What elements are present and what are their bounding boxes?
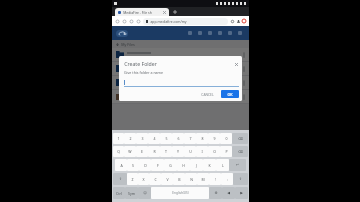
button[interactable]: F <box>151 159 164 171</box>
button[interactable]: ◀ <box>222 187 235 199</box>
staticText: I <box>201 149 203 154</box>
staticText: ◀ <box>227 191 230 195</box>
button[interactable]: Home <box>135 18 142 25</box>
button[interactable]: I <box>196 146 208 157</box>
button[interactable]: C <box>149 173 161 185</box>
button[interactable]: O <box>208 146 220 157</box>
button[interactable]: S <box>127 159 139 171</box>
button[interactable]: Forward <box>128 18 135 25</box>
button[interactable]: CANCEL <box>197 90 218 98</box>
button[interactable]: V <box>161 173 173 185</box>
button[interactable]: Ctrl <box>113 187 125 199</box>
button[interactable]: P <box>220 146 232 157</box>
staticText: MediaFire - File sh <box>123 10 152 15</box>
staticText: X <box>142 177 145 182</box>
button[interactable]: U <box>184 146 196 157</box>
button[interactable] <box>112 90 249 103</box>
button[interactable]: 9 <box>208 133 220 144</box>
button[interactable]: Back <box>121 18 128 25</box>
button[interactable]: ⚙ <box>209 187 222 199</box>
button[interactable]: Reload <box>114 18 121 25</box>
staticText: English(US) <box>172 191 189 195</box>
button[interactable]: Z <box>127 173 138 185</box>
button[interactable]: 4 <box>148 133 160 144</box>
staticText: J <box>196 163 197 168</box>
button[interactable]: 5 <box>160 133 172 144</box>
button[interactable]: ⇧ <box>113 173 127 185</box>
staticText: 5 <box>165 136 168 141</box>
button[interactable]: Menu <box>241 18 247 24</box>
button[interactable]: A <box>115 159 127 171</box>
button[interactable]: L <box>216 159 229 171</box>
button[interactable]: 1 <box>113 133 124 144</box>
staticText: ! <box>215 177 216 182</box>
button[interactable]: ! <box>209 173 221 185</box>
button[interactable]: MediaFire home <box>116 30 128 37</box>
button[interactable]: ⌫ <box>232 133 248 144</box>
button[interactable]: Close <box>233 61 239 67</box>
button[interactable]: ☺ <box>138 187 151 199</box>
button[interactable]: Search <box>216 29 224 37</box>
button[interactable]: Account <box>236 29 244 37</box>
button[interactable]: R <box>148 146 160 157</box>
button[interactable]: E <box>136 146 148 157</box>
button[interactable]: M <box>197 173 209 185</box>
button[interactable] <box>112 48 249 61</box>
button[interactable]: Sym <box>125 187 138 199</box>
staticText: ⇧ <box>239 177 242 181</box>
staticText: Ctrl <box>116 191 122 196</box>
button[interactable]: Y <box>172 146 184 157</box>
button[interactable]: Filter <box>206 29 214 37</box>
button[interactable]: B <box>173 173 185 185</box>
staticText: Z <box>131 177 134 182</box>
button[interactable]: Notifications <box>226 29 234 37</box>
button[interactable]: My Files <box>116 40 245 48</box>
button[interactable]: Profile <box>235 18 241 24</box>
button[interactable]: ▶ <box>235 187 248 199</box>
staticText: ☺ <box>143 191 147 195</box>
staticText: B <box>178 177 181 182</box>
staticText: 6 <box>177 136 180 141</box>
button[interactable]: W <box>124 146 136 157</box>
button[interactable]: MediaFire - File sh <box>115 8 169 16</box>
staticText: Give this folder a name <box>124 70 163 75</box>
button[interactable]: 7 <box>184 133 196 144</box>
button[interactable]: Bookmark <box>229 18 235 24</box>
button[interactable]: T <box>160 146 172 157</box>
button[interactable]: 2 <box>124 133 136 144</box>
staticText: C <box>154 177 157 182</box>
button[interactable]: ⌫ <box>232 146 248 157</box>
staticText: M <box>201 177 205 182</box>
button[interactable]: X <box>138 173 149 185</box>
button[interactable]: Add <box>196 29 204 37</box>
button[interactable]: 6 <box>172 133 184 144</box>
button[interactable]: 0 <box>220 133 232 144</box>
button[interactable]: OK <box>221 90 239 98</box>
button[interactable]: K <box>203 159 216 171</box>
button[interactable]: H <box>177 159 190 171</box>
button[interactable]: ⇧ <box>233 173 248 185</box>
button[interactable]: ↵ <box>229 159 246 171</box>
button[interactable]: 8 <box>196 133 208 144</box>
staticText: ⌫ <box>238 150 243 154</box>
button[interactable]: Q <box>113 146 124 157</box>
button[interactable]: G <box>164 159 177 171</box>
button[interactable]: D <box>139 159 151 171</box>
staticText: E <box>141 149 143 154</box>
staticText: K <box>208 163 211 168</box>
button[interactable]: New tab <box>171 8 179 16</box>
staticText: ⇧ <box>119 177 122 181</box>
button[interactable]: 3 <box>136 133 148 144</box>
button[interactable]: app.mediafire.com/my <box>143 18 228 25</box>
staticText: ↵ <box>236 163 239 167</box>
staticText: ⚙ <box>214 191 218 195</box>
staticText: OK <box>227 92 233 97</box>
button[interactable] <box>112 62 249 75</box>
button[interactable] <box>112 76 249 89</box>
button[interactable]: : <box>221 173 233 185</box>
button[interactable]: N <box>185 173 197 185</box>
button[interactable]: Upload <box>186 29 194 37</box>
button[interactable]: J <box>190 159 203 171</box>
button[interactable] <box>124 79 239 86</box>
button[interactable]: Space <box>151 187 209 199</box>
